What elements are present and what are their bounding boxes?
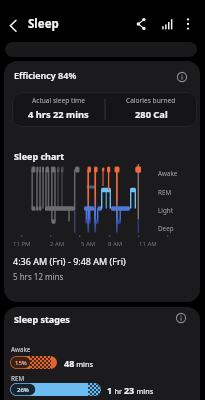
button[interactable]: [173, 310, 189, 326]
button[interactable]: [131, 14, 151, 34]
staticText: Sleep stages: [14, 313, 70, 325]
staticText: Actual sleep time: [32, 96, 85, 105]
staticText: 5 AM: [81, 240, 96, 248]
staticText: 8 AM: [108, 240, 123, 248]
staticText: 11 AM: [139, 240, 157, 248]
staticText: Sleep chart: [14, 150, 65, 162]
button[interactable]: 26%: [10, 383, 101, 396]
staticText: 48 mins: [64, 357, 93, 369]
button[interactable]: [157, 14, 177, 34]
staticText: 11 PM: [13, 240, 31, 248]
staticText: REM: [158, 188, 172, 197]
staticText: 15%: [15, 359, 27, 367]
staticText: Sleep: [28, 16, 59, 32]
staticText: 26%: [17, 386, 29, 394]
staticText: Efficiency 84%: [14, 69, 77, 81]
staticText: 4:36 AM (Fri) - 9:48 AM (Fri): [13, 255, 126, 267]
button[interactable]: 15%: [10, 356, 57, 369]
staticText: 4 hrs 22 mins: [28, 108, 89, 121]
button[interactable]: [178, 14, 198, 34]
button[interactable]: [1, 14, 25, 38]
staticText: 2 AM: [50, 240, 65, 248]
staticText: REM: [11, 374, 25, 383]
staticText: 280 Cal: [135, 108, 168, 121]
staticText: Calories burned: [126, 96, 176, 105]
button[interactable]: [5, 42, 197, 57]
staticText: Deep: [158, 224, 174, 233]
staticText: Awake: [158, 169, 178, 178]
button[interactable]: [174, 69, 190, 85]
staticText: 1 hr 23 mins: [107, 384, 154, 396]
staticText: Light: [158, 206, 173, 215]
staticText: Awake: [11, 345, 31, 354]
staticText: 5 hrs 12 mins: [13, 271, 64, 282]
